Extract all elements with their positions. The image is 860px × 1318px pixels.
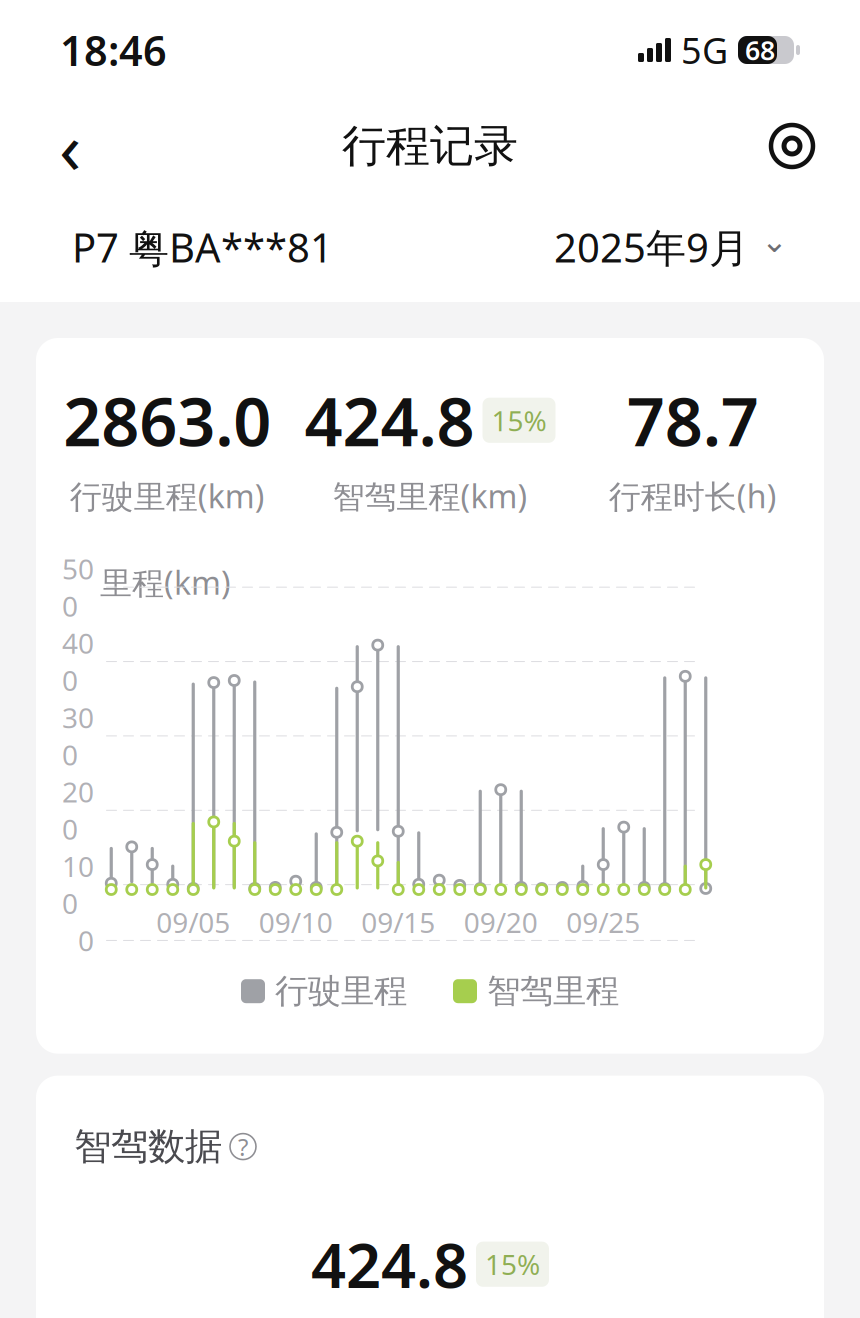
staticText: 09/20 <box>464 903 538 941</box>
button[interactable]: Back <box>40 114 100 178</box>
staticText: 09/05 <box>156 903 230 941</box>
staticText: 424.8 <box>311 1223 468 1305</box>
staticText: 09/15 <box>361 903 435 941</box>
staticText: 5G <box>681 26 728 74</box>
staticText: 100 <box>62 847 94 922</box>
button[interactable]: Settings <box>764 118 820 174</box>
staticText: 智驾数据 <box>74 1124 222 1169</box>
staticText: 78.7 <box>627 376 759 464</box>
staticText: 2863.0 <box>63 376 271 464</box>
staticText: ? <box>238 1131 248 1162</box>
staticText: 0 <box>78 922 94 959</box>
staticText: 18:46 <box>60 23 167 77</box>
staticText: 09/25 <box>566 903 640 941</box>
staticText: 行驶里程 <box>275 971 407 1012</box>
staticText: 400 <box>62 624 94 699</box>
staticText: ‹ <box>59 98 81 194</box>
staticText: 68 <box>745 32 775 68</box>
staticText: P7 粤BA***81 <box>72 220 333 274</box>
staticText: 行程时长(h) <box>609 474 777 517</box>
staticText: 424.8 <box>304 376 474 464</box>
staticText: ⌄ <box>761 223 788 259</box>
staticText: 15% <box>491 402 546 439</box>
staticText: 行驶里程(km) <box>70 474 265 517</box>
staticText: 15% <box>485 1246 540 1283</box>
staticText: 200 <box>62 773 94 847</box>
staticText: 智驾里程 <box>487 971 619 1012</box>
staticText: 2025年9月 <box>554 220 749 273</box>
staticText: 300 <box>62 699 94 773</box>
staticText: 行程记录 <box>342 119 518 173</box>
staticText: 智驾里程(km) <box>332 474 527 517</box>
button[interactable]: 2025年9月 <box>554 220 788 273</box>
staticText: 里程(km) <box>100 561 231 603</box>
button[interactable]: Help <box>230 1134 256 1160</box>
staticText: 09/10 <box>259 903 333 941</box>
staticText: 500 <box>62 550 94 624</box>
